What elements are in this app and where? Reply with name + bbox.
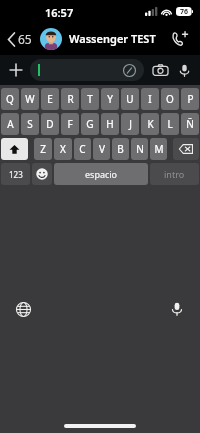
button[interactable]: Shift bbox=[1, 138, 28, 160]
button[interactable]: W bbox=[21, 88, 39, 110]
button[interactable]: Backspace bbox=[173, 138, 199, 160]
staticText: C bbox=[79, 142, 86, 156]
button[interactable]: Voice message bbox=[174, 60, 194, 80]
staticText: P bbox=[187, 92, 194, 106]
staticText: I bbox=[148, 92, 152, 106]
staticText: Z bbox=[40, 142, 46, 156]
button[interactable]: X bbox=[54, 138, 72, 160]
button[interactable]: Attach bbox=[6, 60, 26, 80]
other: Stickers bbox=[123, 64, 136, 77]
button[interactable]: U bbox=[121, 88, 139, 110]
button[interactable]: H bbox=[101, 113, 119, 135]
button[interactable]: Z bbox=[34, 138, 52, 160]
button[interactable]: Change keyboard language bbox=[12, 298, 34, 320]
staticText: L bbox=[167, 117, 173, 131]
button[interactable]: N bbox=[131, 138, 148, 160]
staticText: B bbox=[117, 142, 124, 156]
staticText: D bbox=[46, 117, 54, 131]
staticText: F bbox=[67, 117, 73, 131]
button[interactable]: I bbox=[141, 88, 159, 110]
button[interactable]: O bbox=[161, 88, 179, 110]
button[interactable]: C bbox=[74, 138, 91, 160]
button[interactable]: 123 bbox=[1, 163, 30, 185]
staticText: H bbox=[106, 117, 114, 131]
staticText: 65 bbox=[18, 31, 32, 47]
button[interactable]: S bbox=[21, 113, 39, 135]
button[interactable]: E bbox=[41, 88, 59, 110]
button[interactable]: Emoji bbox=[32, 163, 52, 185]
staticText: intro bbox=[164, 168, 185, 180]
staticText: O bbox=[166, 92, 174, 106]
button[interactable]: Camera bbox=[150, 60, 170, 80]
button[interactable]: L bbox=[161, 113, 179, 135]
button[interactable]: T bbox=[81, 88, 99, 110]
staticText: Y bbox=[107, 92, 113, 106]
staticText: N bbox=[136, 142, 144, 156]
button[interactable]: intro bbox=[150, 163, 199, 185]
button[interactable]: A bbox=[1, 113, 19, 135]
staticText: G bbox=[86, 117, 94, 131]
staticText: espacio bbox=[85, 168, 118, 180]
staticText: M bbox=[154, 142, 164, 156]
button[interactable]: F bbox=[61, 113, 79, 135]
staticText: U bbox=[126, 92, 134, 106]
button[interactable]: Wassenger TEST bbox=[69, 31, 168, 46]
button[interactable]: Q bbox=[1, 88, 19, 110]
button[interactable]: Contact photo bbox=[40, 28, 62, 50]
staticText: A bbox=[7, 117, 14, 131]
button[interactable]: J bbox=[121, 113, 139, 135]
staticText: S bbox=[27, 117, 33, 131]
staticText: K bbox=[147, 117, 154, 131]
button[interactable]: Stickers bbox=[30, 59, 144, 81]
staticText: 76 bbox=[180, 7, 189, 16]
button[interactable]: D bbox=[41, 113, 59, 135]
staticText: Ñ bbox=[186, 117, 194, 131]
button[interactable]: G bbox=[81, 113, 99, 135]
staticText: E bbox=[47, 92, 53, 106]
staticText: 16:57 bbox=[45, 5, 74, 20]
staticText: 123 bbox=[9, 169, 23, 180]
button[interactable]: P bbox=[181, 88, 199, 110]
button[interactable]: R bbox=[61, 88, 79, 110]
button[interactable]: Add call bbox=[168, 27, 192, 51]
staticText: X bbox=[60, 142, 66, 156]
staticText: V bbox=[99, 142, 105, 156]
button[interactable]: Y bbox=[101, 88, 119, 110]
button[interactable]: V bbox=[93, 138, 110, 160]
staticText: R bbox=[67, 92, 74, 106]
staticText: T bbox=[87, 92, 93, 106]
button[interactable]: Ñ bbox=[181, 113, 199, 135]
button[interactable]: Back, 65 chats bbox=[5, 28, 35, 50]
button[interactable]: B bbox=[112, 138, 129, 160]
button[interactable]: espacio bbox=[54, 163, 148, 185]
staticText: W bbox=[25, 92, 35, 106]
button[interactable]: K bbox=[141, 113, 159, 135]
staticText: Q bbox=[6, 92, 14, 106]
button[interactable]: M bbox=[150, 138, 167, 160]
button[interactable]: Dictation bbox=[166, 298, 188, 320]
staticText: J bbox=[129, 117, 132, 131]
